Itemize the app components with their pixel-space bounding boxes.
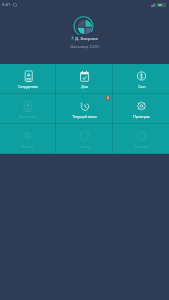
button[interactable]: Счет	[113, 64, 169, 93]
staticText: Дни	[81, 84, 88, 89]
staticText: Счет	[138, 84, 146, 89]
staticText: Документы	[18, 114, 37, 119]
staticText: 4	[107, 96, 109, 100]
staticText: Помощь	[134, 144, 149, 149]
staticText: Склад	[80, 144, 90, 149]
staticText: Отчёты	[21, 144, 34, 149]
staticText: Д. Бакрова	[75, 35, 98, 41]
staticText: Проверки	[133, 114, 150, 119]
staticText: 9:41	[2, 2, 11, 8]
button[interactable]: Помощь	[113, 124, 169, 153]
button[interactable]: Текущий заказ	[56, 94, 112, 123]
button[interactable]: Отчёты	[0, 124, 55, 153]
button[interactable]: Сотрудники	[0, 64, 55, 93]
button[interactable]: Документы	[0, 94, 55, 123]
button[interactable]: Проверки	[113, 94, 169, 123]
staticText: Текущий заказ	[72, 114, 97, 119]
button[interactable]: Склад	[56, 124, 112, 153]
staticText: Дагмайр ООО	[70, 43, 100, 49]
button[interactable]: Дни	[56, 64, 112, 93]
staticText: Сотрудники	[18, 84, 38, 89]
